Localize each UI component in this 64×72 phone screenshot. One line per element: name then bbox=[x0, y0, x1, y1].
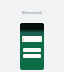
staticText: Welcome back bbox=[0, 11, 64, 15]
button[interactable] bbox=[20, 23, 44, 70]
